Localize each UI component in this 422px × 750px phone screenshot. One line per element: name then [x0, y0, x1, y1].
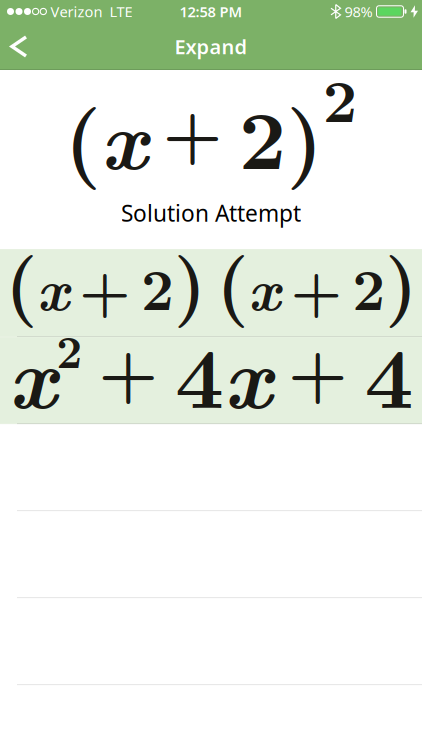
- staticText: 98%: [344, 2, 372, 21]
- button[interactable]: Back: [0, 23, 52, 70]
- staticText: LTE: [109, 2, 132, 21]
- button[interactable]: (x + 2) (x + 2): [0, 249, 422, 336]
- staticText: (x + 2) (x + 2): [5, 229, 417, 330]
- staticText: Solution Attempt: [121, 198, 301, 228]
- staticText: Expand: [174, 33, 247, 60]
- staticText: Verizon: [50, 2, 102, 21]
- staticText: 12:58 PM: [179, 2, 242, 21]
- button[interactable]: x2 + 4x + 4: [0, 337, 422, 423]
- staticText: x2 + 4x + 4: [8, 312, 413, 433]
- staticText: (x + 2)2: [64, 55, 358, 193]
